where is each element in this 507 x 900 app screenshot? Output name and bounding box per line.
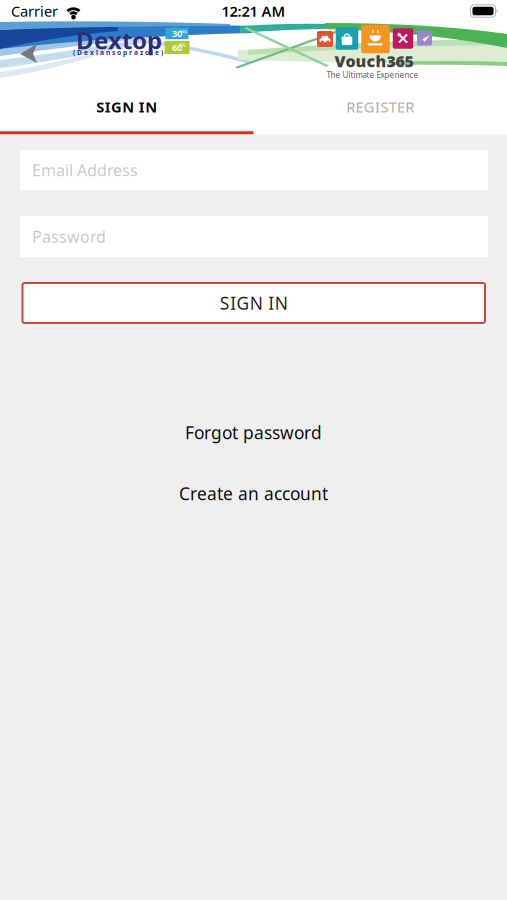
button[interactable]: Create an account	[179, 482, 328, 505]
button[interactable]: Password	[20, 216, 488, 257]
staticText: REGISTER	[346, 97, 414, 116]
staticText: Create an account	[179, 482, 328, 505]
staticText: Carrier	[11, 1, 58, 21]
button[interactable]: Email Address	[20, 150, 488, 190]
staticText: Email Address	[32, 159, 138, 181]
staticText: The Ultimate Experience	[326, 70, 418, 80]
staticText: Dextop	[76, 24, 162, 56]
staticText: Vouch365	[334, 50, 413, 72]
staticText: ( D e x l a n s o p r a z o l e )	[73, 48, 163, 57]
button[interactable]: Forgot password	[185, 421, 322, 444]
button[interactable]: SIGN IN	[0, 88, 253, 134]
staticText: 30	[172, 27, 182, 40]
staticText: Forgot password	[185, 421, 322, 444]
staticText: SIGN IN	[96, 97, 157, 116]
button[interactable]: SIGN IN	[22, 283, 485, 323]
staticText: Password	[32, 226, 106, 247]
button[interactable]: REGISTER	[253, 88, 507, 134]
staticText: 12:21 AM	[221, 1, 285, 21]
staticText: MG	[180, 29, 187, 34]
staticText: MG	[179, 42, 186, 48]
staticText: SIGN IN	[220, 291, 288, 314]
staticText: 60	[172, 41, 182, 54]
